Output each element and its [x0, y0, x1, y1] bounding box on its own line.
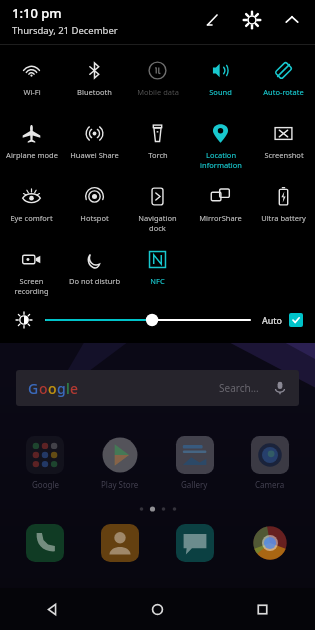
- staticText: Auto: [262, 314, 283, 326]
- staticText: Auto-rotate: [263, 87, 304, 97]
- staticText: Eye comfort: [10, 213, 53, 223]
- staticText: 1:10 pm: [12, 4, 62, 22]
- button[interactable]: Torch: [126, 114, 189, 177]
- button[interactable]: Wi-Fi: [0, 51, 63, 114]
- button[interactable]: Bluetooth: [63, 51, 126, 114]
- staticText: G: [28, 379, 39, 398]
- staticText: Location information: [200, 150, 242, 170]
- button[interactable]: Screenshot: [252, 114, 315, 177]
- button[interactable]: Collapse: [279, 7, 305, 33]
- staticText: Thursday, 21 December: [12, 24, 118, 37]
- staticText: o: [48, 379, 57, 398]
- staticText: Camera: [255, 479, 285, 490]
- staticText: Airplane mode: [6, 150, 58, 160]
- button[interactable]: Auto: [262, 313, 303, 327]
- button[interactable]: Location information: [189, 114, 252, 177]
- button[interactable]: Settings: [239, 7, 265, 33]
- button[interactable]: Contacts: [82, 524, 157, 562]
- button[interactable]: Google search: [16, 370, 299, 406]
- button[interactable]: Phone: [8, 524, 82, 562]
- staticText: Do not disturb: [69, 276, 120, 286]
- staticText: Huawei Share: [70, 150, 119, 160]
- button[interactable]: Back: [0, 588, 105, 630]
- button[interactable]: Gallery: [157, 436, 232, 490]
- staticText: g: [57, 379, 66, 398]
- staticText: Hotspot: [80, 213, 109, 223]
- button[interactable]: Brightness slider: [46, 310, 250, 330]
- button[interactable]: Mobile data: [126, 51, 189, 114]
- button[interactable]: Messages: [157, 524, 232, 562]
- button[interactable]: Recents: [210, 588, 315, 630]
- button[interactable]: Huawei Share: [63, 114, 126, 177]
- button[interactable]: Camera: [232, 436, 307, 490]
- button[interactable]: Do not disturb: [63, 240, 126, 303]
- staticText: e: [70, 379, 79, 398]
- button[interactable]: Google: [8, 436, 82, 490]
- button[interactable]: Eye comfort: [0, 177, 63, 240]
- staticText: Navigation dock: [138, 213, 177, 233]
- button[interactable]: Play Store: [82, 436, 157, 490]
- staticText: Wi-Fi: [23, 87, 41, 97]
- button[interactable]: Navigation dock: [126, 177, 189, 240]
- button[interactable]: Hotspot: [63, 177, 126, 240]
- button[interactable]: Auto-rotate: [252, 51, 315, 114]
- button[interactable]: Screen recording: [0, 240, 63, 303]
- staticText: Screen recording: [14, 276, 49, 296]
- button[interactable]: NFC: [126, 240, 189, 303]
- staticText: Mobile data: [137, 87, 179, 97]
- staticText: Bluetooth: [77, 87, 112, 97]
- staticText: Ultra battery: [261, 213, 306, 223]
- button[interactable]: Airplane mode: [0, 114, 63, 177]
- button[interactable]: MirrorShare: [189, 177, 252, 240]
- staticText: Google: [32, 479, 59, 490]
- staticText: Gallery: [181, 479, 208, 490]
- staticText: MirrorShare: [199, 213, 242, 223]
- staticText: l: [66, 379, 70, 398]
- staticText: NFC: [150, 276, 165, 286]
- button[interactable]: Ultra battery: [252, 177, 315, 240]
- button[interactable]: Brightness: [12, 308, 36, 332]
- staticText: Sound: [209, 87, 232, 97]
- staticText: Play Store: [101, 479, 139, 490]
- button[interactable]: Chrome: [232, 524, 307, 562]
- staticText: Screenshot: [264, 150, 304, 160]
- button[interactable]: Home: [105, 588, 210, 630]
- button[interactable]: Sound: [189, 51, 252, 114]
- staticText: Torch: [148, 150, 168, 160]
- staticText: o: [39, 379, 48, 398]
- staticText: Search…: [219, 381, 259, 395]
- button[interactable]: Edit: [199, 7, 225, 33]
